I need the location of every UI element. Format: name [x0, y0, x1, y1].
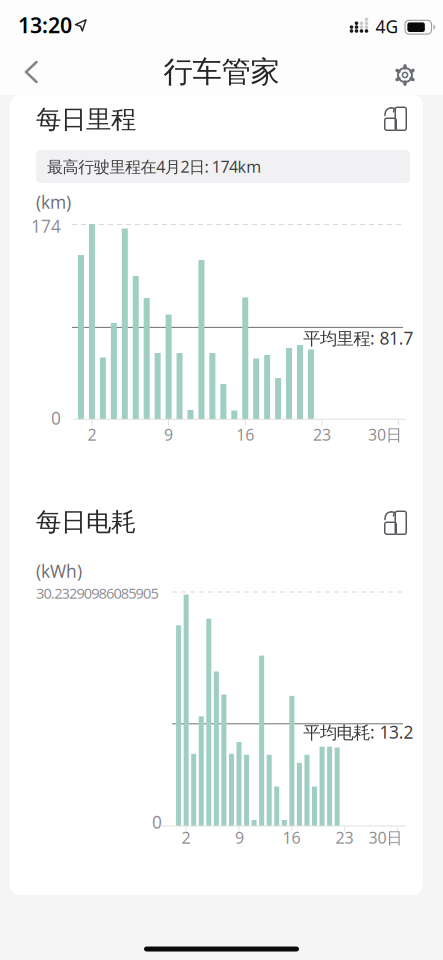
staticText: 23: [335, 827, 353, 848]
staticText: 4G: [375, 15, 398, 38]
button[interactable]: Back: [18, 56, 50, 88]
staticText: 9: [235, 827, 244, 848]
staticText: 30日: [368, 827, 402, 848]
staticText: 最高行驶里程在4月2日: 174km: [47, 156, 261, 177]
staticText: 174: [31, 214, 61, 237]
button[interactable]: Rotate chart: [380, 508, 410, 538]
staticText: 平均电耗: 13.2: [303, 720, 413, 743]
button[interactable]: Settings: [389, 59, 421, 91]
staticText: 每日里程: [36, 104, 136, 135]
staticText: 30日: [368, 424, 402, 445]
staticText: 2: [181, 827, 190, 848]
staticText: 0: [51, 406, 61, 429]
staticText: (kWh): [36, 559, 82, 582]
staticText: 行车管家: [163, 54, 279, 90]
staticText: 16: [236, 424, 254, 445]
staticText: 平均里程: 81.7: [303, 326, 413, 349]
staticText: 每日电耗: [36, 506, 136, 537]
staticText: 9: [164, 424, 173, 445]
staticText: (km): [36, 190, 71, 213]
staticText: 23: [313, 424, 331, 445]
staticText: 30.23290986085905: [36, 583, 158, 603]
button[interactable]: Rotate chart: [380, 104, 410, 134]
staticText: 13:20: [18, 11, 72, 39]
staticText: 16: [283, 827, 301, 848]
staticText: 0: [152, 810, 162, 833]
staticText: 2: [87, 424, 96, 445]
